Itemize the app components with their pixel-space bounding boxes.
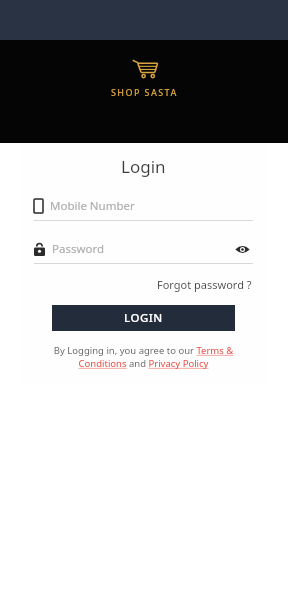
- button[interactable]: Password: [34, 238, 253, 264]
- staticText: LOGIN: [124, 310, 163, 326]
- staticText: Forgot password ?: [157, 277, 252, 292]
- button[interactable]: Forgot password ?: [156, 275, 253, 294]
- staticText: Password: [52, 241, 231, 257]
- button[interactable]: By Logging in, you agree to our Terms & …: [34, 344, 253, 370]
- button[interactable]: LOGIN: [52, 305, 235, 331]
- staticText: SHOP SASTA: [111, 86, 178, 98]
- button[interactable]: Mobile Number: [34, 195, 253, 221]
- button[interactable]: Show password: [231, 238, 253, 260]
- staticText: Mobile Number: [50, 198, 135, 214]
- staticText: Login: [121, 155, 166, 178]
- staticText: By Logging in, you agree to our Terms & …: [38, 344, 249, 370]
